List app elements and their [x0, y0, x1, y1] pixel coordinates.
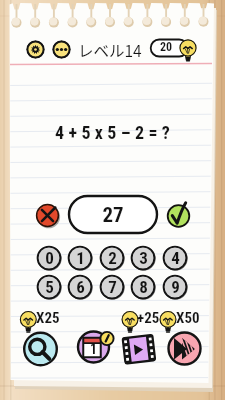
staticText: レベル14 [78, 39, 142, 61]
staticText: 20 [160, 40, 173, 54]
staticText: 4 + 5 x 5 – 2 = ? [0, 122, 225, 400]
button[interactable]: 1 [67, 245, 93, 271]
button[interactable]: 4 [162, 245, 188, 271]
staticText: 3 [139, 248, 148, 268]
button[interactable]: Watch video for 25 hints [118, 306, 164, 368]
button[interactable]: Clear [35, 203, 62, 230]
staticText: +25 [137, 309, 160, 327]
button[interactable]: 9 [162, 274, 188, 300]
staticText: X25 [36, 309, 60, 327]
button[interactable]: 2 [99, 245, 125, 271]
staticText: 5 [45, 277, 54, 297]
button[interactable]: 6 [67, 274, 93, 300]
button[interactable]: More options [52, 40, 71, 59]
staticText: 7 [108, 277, 117, 297]
button[interactable]: 27 [69, 196, 157, 233]
button[interactable]: Hints 20 [150, 36, 200, 60]
staticText: 1 [90, 341, 98, 357]
button[interactable]: Daily reward [76, 306, 118, 368]
button[interactable]: Skip level, costs 50 [156, 306, 206, 368]
button[interactable]: 3 [130, 245, 156, 271]
staticText: 8 [139, 277, 148, 297]
staticText: 9 [171, 277, 180, 297]
staticText: 2 [108, 248, 117, 268]
button[interactable]: 8 [130, 274, 156, 300]
staticText: 0 [45, 248, 54, 268]
staticText: 27 [102, 203, 124, 228]
button[interactable]: 5 [36, 274, 62, 300]
button[interactable]: 0 [36, 245, 62, 271]
button[interactable]: Hint, costs 25 [18, 306, 60, 368]
staticText: 1 [76, 248, 85, 268]
button[interactable]: 7 [99, 274, 125, 300]
staticText: 4 [171, 248, 180, 268]
staticText: 6 [76, 277, 85, 297]
button[interactable]: Settings [26, 40, 45, 59]
button[interactable]: Submit answer [165, 200, 193, 228]
staticText: X50 [176, 309, 200, 327]
